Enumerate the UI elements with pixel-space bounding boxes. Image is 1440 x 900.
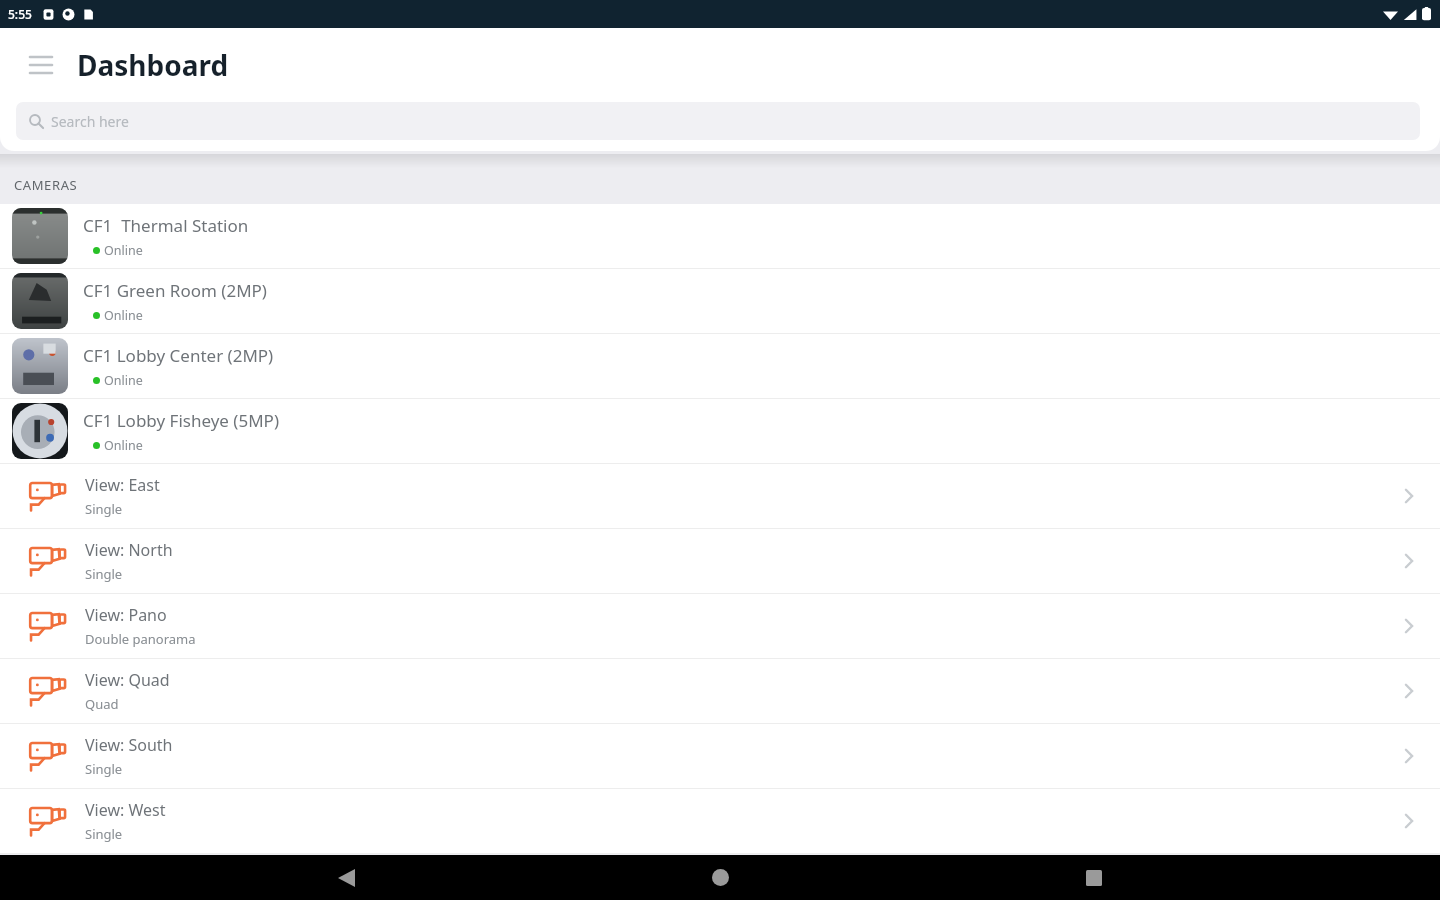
staticText: View: South — [85, 734, 173, 756]
staticText: Search here — [51, 112, 129, 131]
button[interactable]: CF1 Lobby Fisheye (5MP) — [0, 399, 1440, 463]
staticText: CF1 Thermal Station — [83, 214, 249, 237]
staticText: CF1 Lobby Fisheye (5MP) — [83, 409, 279, 432]
staticText: Online — [104, 372, 143, 389]
button[interactable]: View: Pano — [0, 594, 1440, 658]
staticText: Single — [85, 565, 123, 583]
staticText: View: East — [85, 474, 160, 496]
button[interactable]: Home — [692, 855, 748, 900]
button[interactable]: CF1 Green Room (2MP) — [0, 269, 1440, 333]
button[interactable]: View: South — [0, 724, 1440, 788]
staticText: View: Pano — [85, 604, 167, 626]
staticText: View: North — [85, 539, 173, 561]
button[interactable]: View: Quad — [0, 659, 1440, 723]
staticText: Single — [85, 825, 123, 843]
staticText: View: Quad — [85, 669, 170, 691]
staticText: Single — [85, 760, 123, 778]
staticText: CF1 Lobby Center (2MP) — [83, 344, 274, 367]
staticText: Online — [104, 242, 143, 259]
button[interactable]: View: West — [0, 789, 1440, 853]
button[interactable]: Recent apps — [1066, 855, 1122, 900]
staticText: Single — [85, 500, 123, 518]
button[interactable]: Search here — [16, 102, 1420, 140]
button[interactable]: View: East — [0, 464, 1440, 528]
button[interactable]: Open navigation menu — [24, 48, 58, 82]
staticText: Online — [104, 437, 143, 454]
staticText: Quad — [85, 695, 119, 713]
button[interactable]: Back — [318, 855, 374, 900]
button[interactable]: CF1 Thermal Station — [0, 204, 1440, 268]
staticText: Double panorama — [85, 630, 196, 648]
staticText: Online — [104, 307, 143, 324]
button[interactable]: View: North — [0, 529, 1440, 593]
staticText: CF1 Green Room (2MP) — [83, 279, 267, 302]
staticText: CAMERAS — [14, 176, 78, 194]
button[interactable]: CF1 Lobby Center (2MP) — [0, 334, 1440, 398]
staticText: Dashboard — [77, 46, 229, 84]
staticText: 5:55 — [8, 6, 32, 22]
staticText: View: West — [85, 799, 166, 821]
